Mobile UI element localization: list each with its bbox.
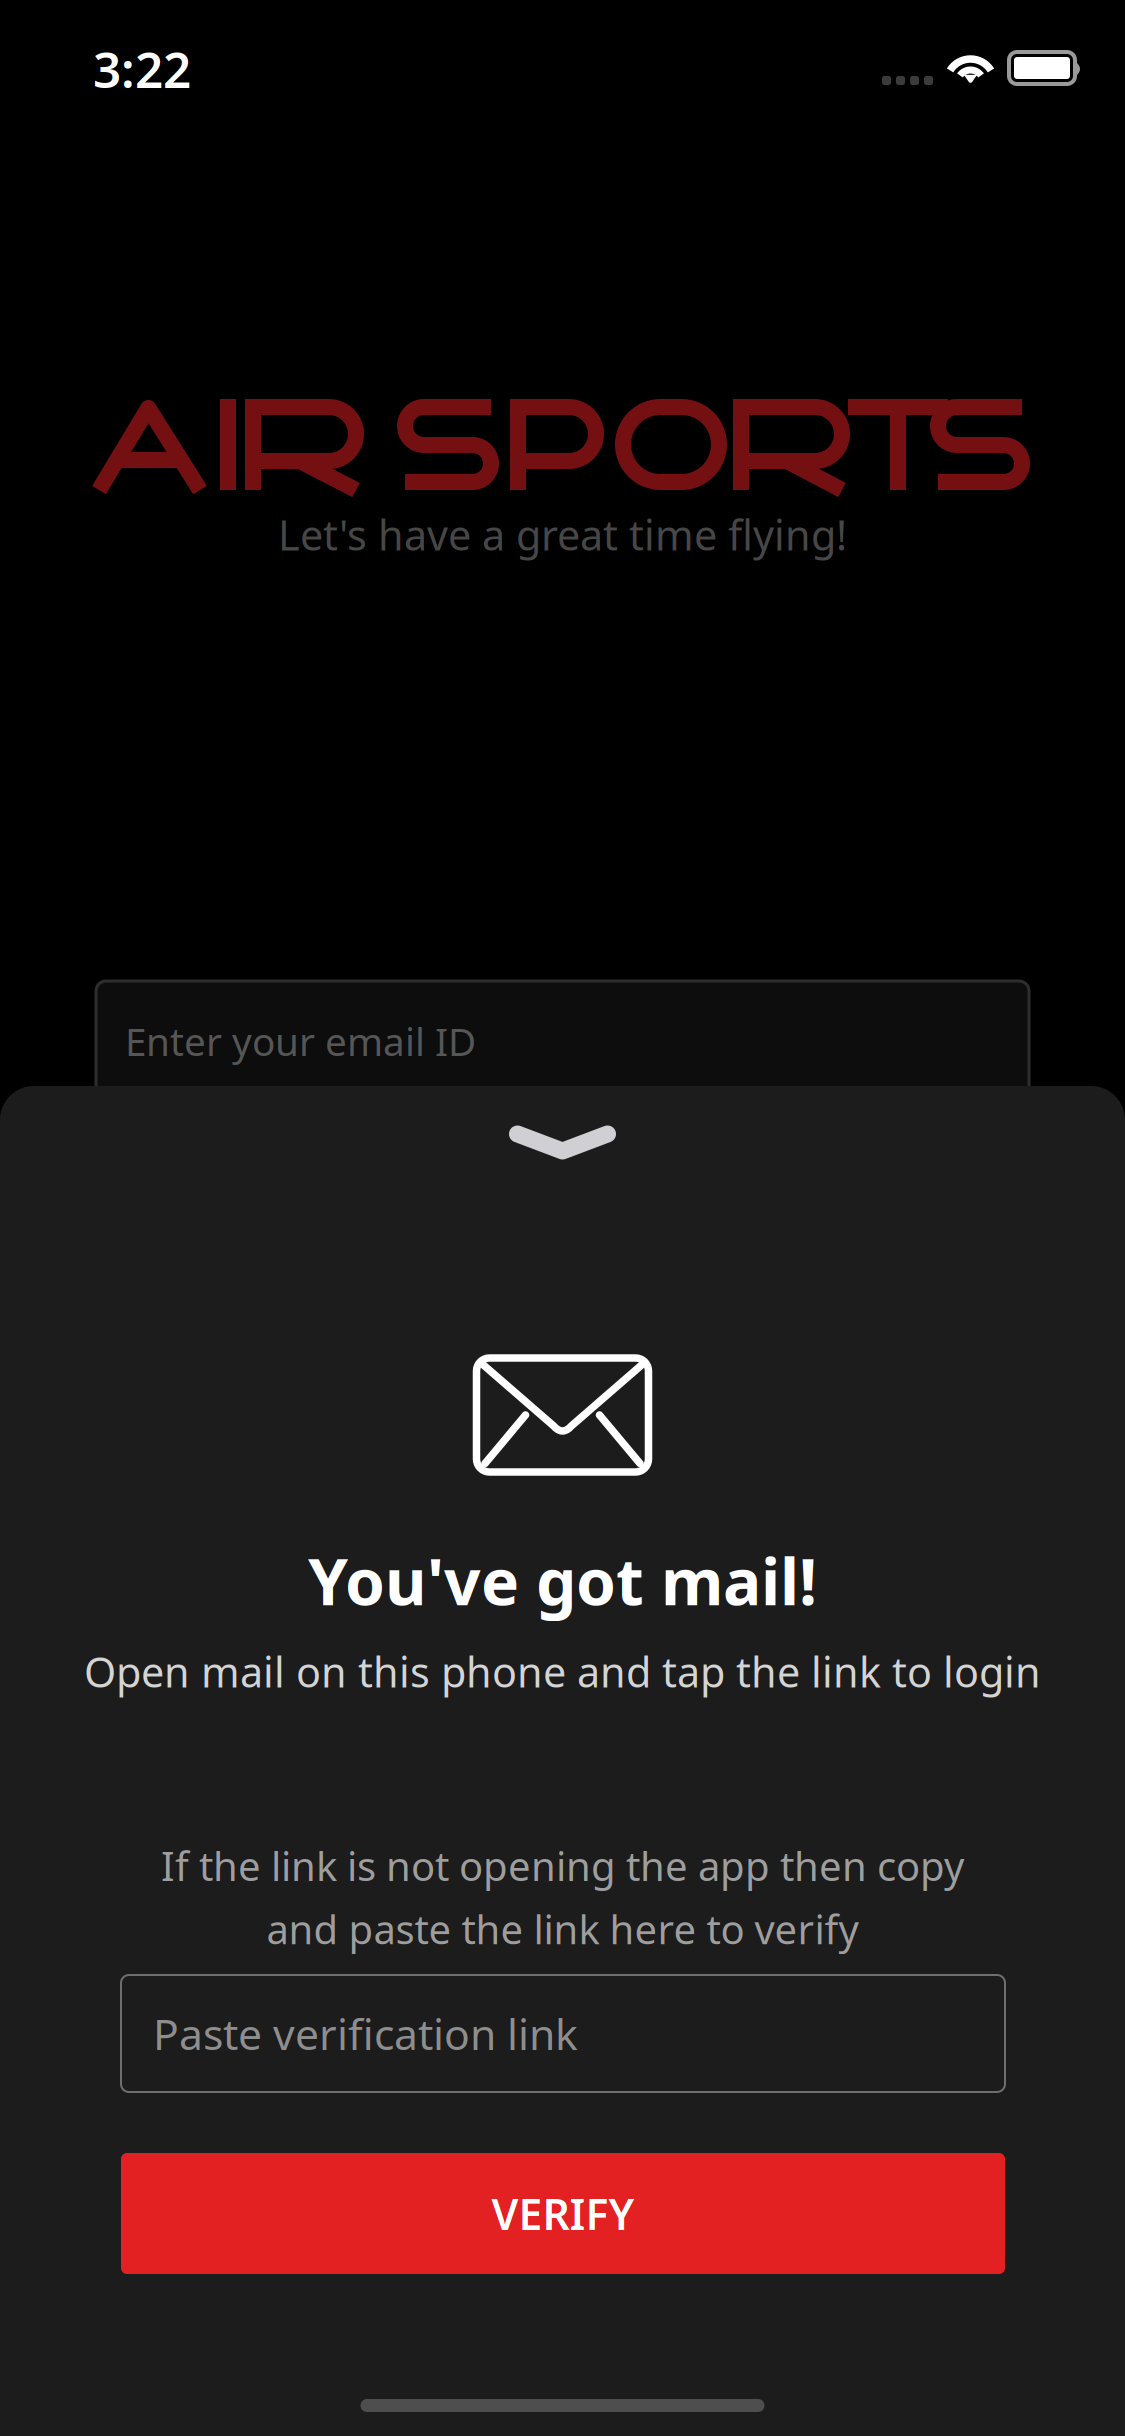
staticText: If the link is not opening the app then … — [161, 1839, 964, 1892]
staticText: and paste the link here to verify — [266, 1902, 858, 1955]
button[interactable]: Dismiss — [412, 1125, 712, 1221]
staticText: Paste verification link — [153, 2005, 578, 2062]
button[interactable]: VERIFY — [121, 2153, 1005, 2274]
staticText: Open mail on this phone and tap the link… — [84, 1644, 1041, 1699]
staticText: You've got mail! — [308, 1538, 817, 1623]
staticText: VERIFY — [491, 2185, 634, 2242]
staticText: 3:22 — [93, 36, 191, 101]
button[interactable]: Paste verification link — [121, 1975, 1005, 2092]
button[interactable]: Enter your email ID — [96, 981, 1029, 1101]
staticText: Enter your email ID — [125, 1015, 476, 1067]
staticText: Let's have a great time flying! — [278, 507, 847, 562]
